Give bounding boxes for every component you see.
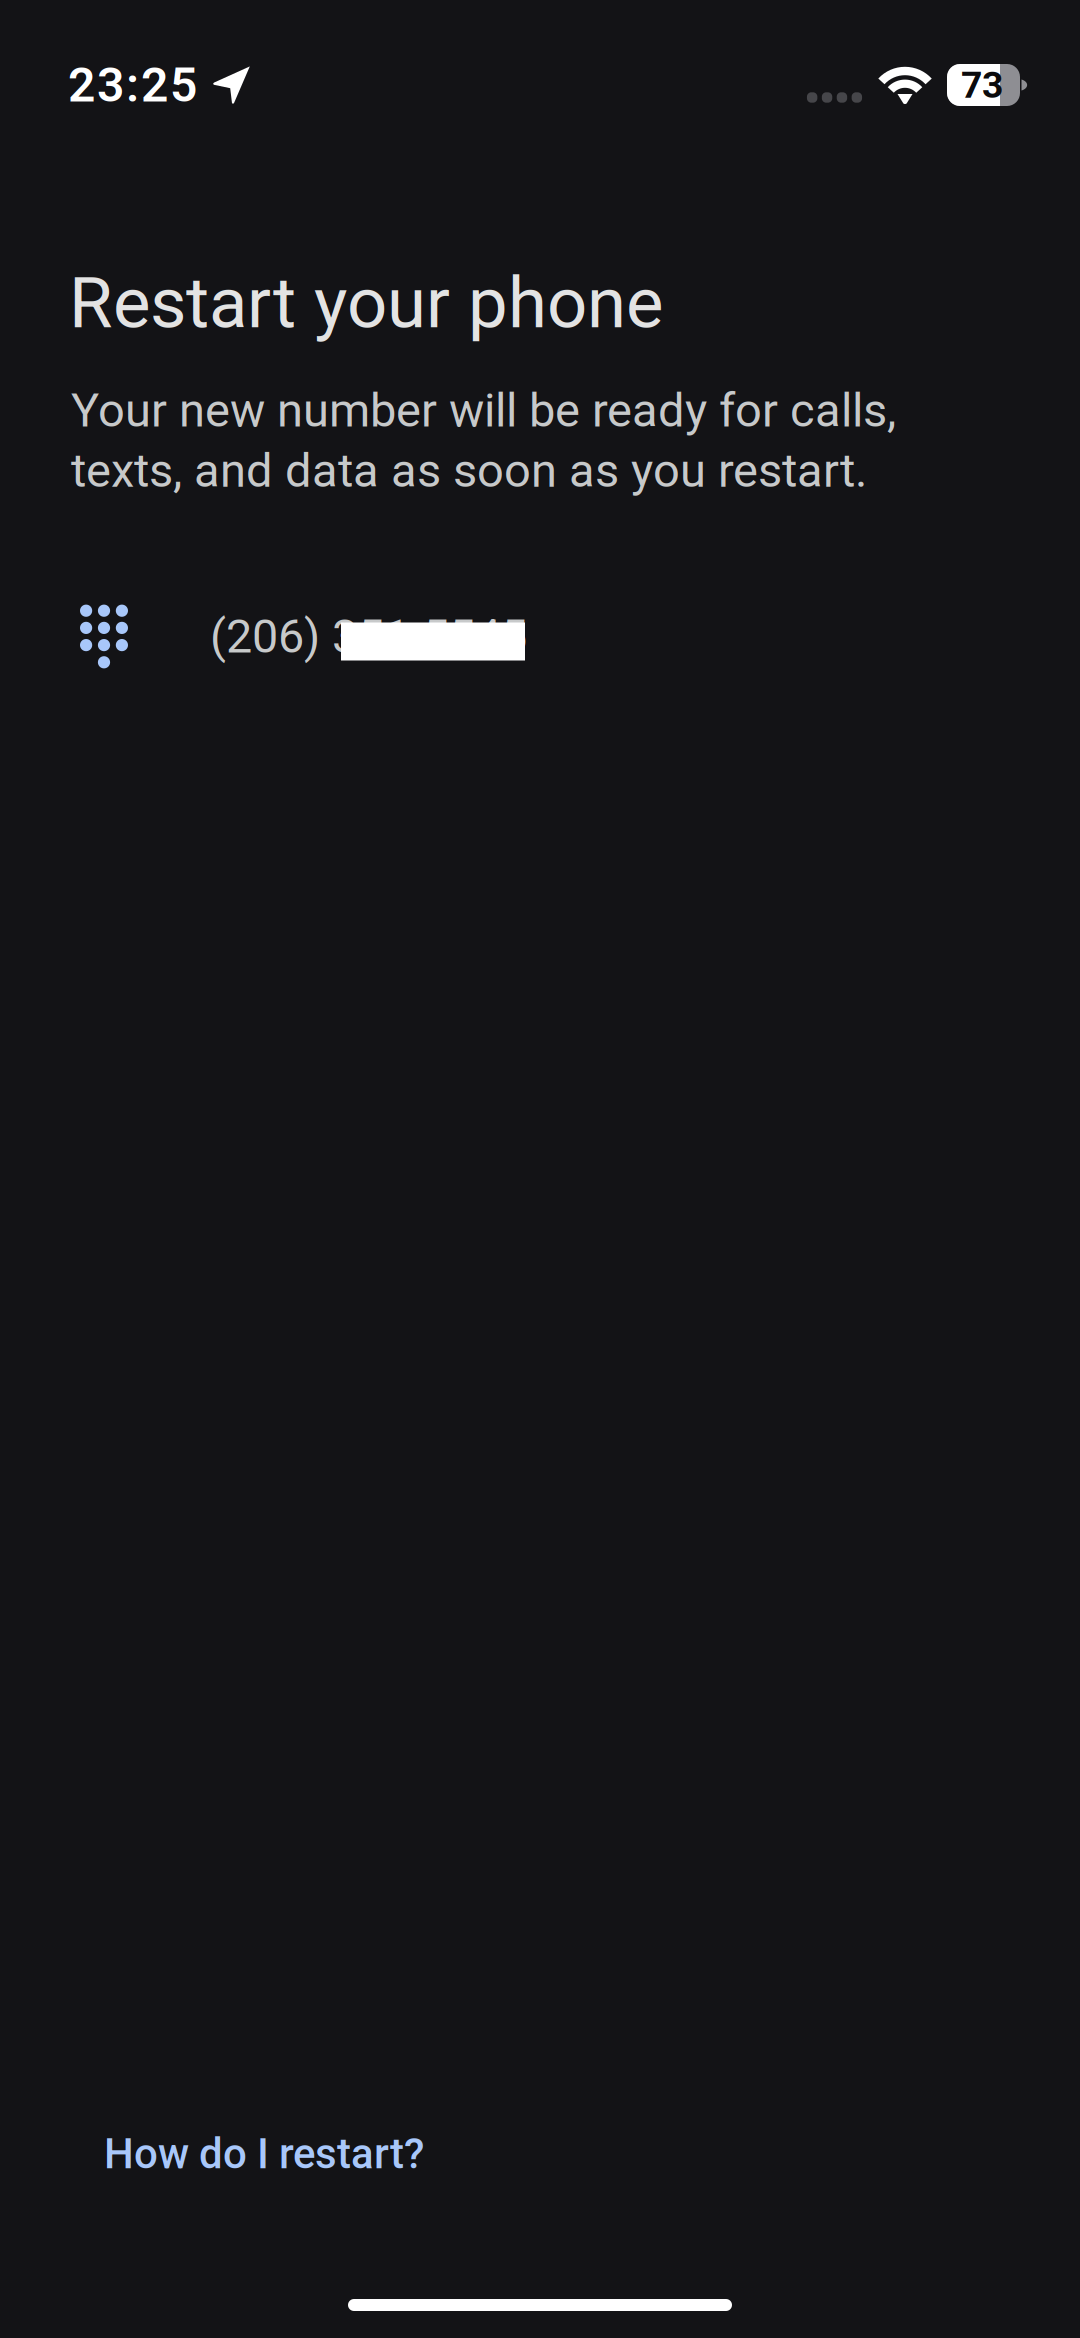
button[interactable]: How do I restart? (104, 2116, 434, 2192)
staticText: Your new number will be ready for calls,… (71, 383, 896, 498)
button[interactable]: Your new number, (206) 351-5545 (78, 591, 558, 681)
staticText: (206) 351-5545 (210, 609, 527, 664)
staticText: How do I restart? (104, 2129, 424, 2179)
staticText: Restart your phone (69, 262, 663, 344)
staticText: 73 (961, 63, 1003, 107)
staticText: 23:25 (68, 57, 197, 113)
